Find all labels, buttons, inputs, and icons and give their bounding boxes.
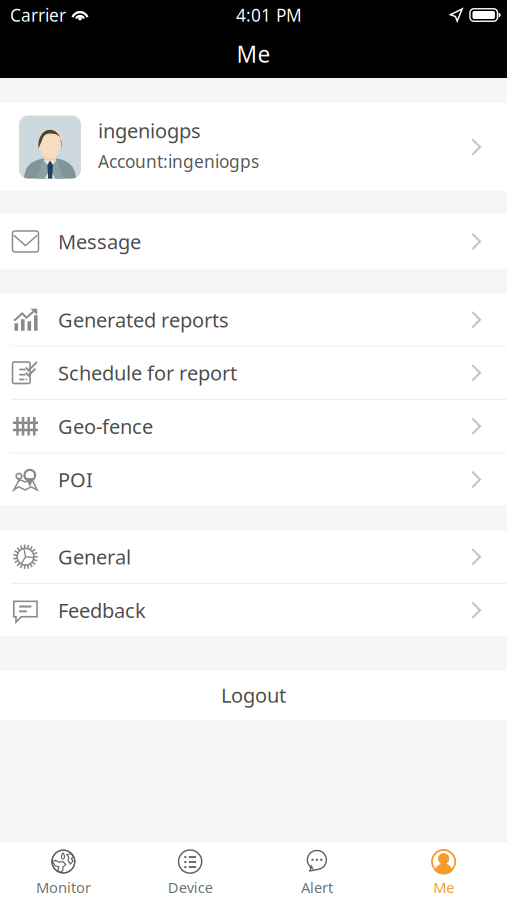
- button[interactable]: Alert: [253, 842, 380, 900]
- button[interactable]: Monitor: [0, 842, 127, 900]
- staticText: Geo-fence: [58, 413, 153, 440]
- staticText: Monitor: [36, 878, 91, 897]
- staticText: Schedule for report: [58, 359, 237, 386]
- staticText: Account:ingeniogps: [98, 150, 259, 173]
- button[interactable]: Generated reports: [0, 294, 507, 345]
- button[interactable]: Logout: [0, 670, 507, 719]
- staticText: Device: [168, 878, 213, 897]
- staticText: General: [58, 543, 131, 570]
- button[interactable]: ingeniogps: [0, 103, 507, 191]
- staticText: Me: [236, 39, 270, 69]
- button[interactable]: Device: [127, 842, 254, 900]
- button[interactable]: POI: [0, 453, 507, 505]
- staticText: ingeniogps: [98, 117, 201, 144]
- staticText: POI: [58, 466, 93, 493]
- button[interactable]: General: [0, 530, 507, 583]
- staticText: Feedback: [58, 597, 146, 624]
- staticText: Logout: [221, 682, 286, 708]
- staticText: Me: [433, 878, 454, 897]
- staticText: Alert: [301, 878, 333, 897]
- button[interactable]: Schedule for report: [0, 346, 507, 399]
- button[interactable]: Message: [0, 214, 507, 269]
- button[interactable]: Me: [380, 842, 507, 900]
- staticText: Message: [58, 228, 141, 255]
- button[interactable]: Geo-fence: [0, 400, 507, 452]
- staticText: Carrier: [10, 3, 66, 26]
- button[interactable]: Feedback: [0, 584, 507, 636]
- staticText: Generated reports: [58, 306, 229, 333]
- staticText: 4:01 PM: [236, 3, 302, 26]
